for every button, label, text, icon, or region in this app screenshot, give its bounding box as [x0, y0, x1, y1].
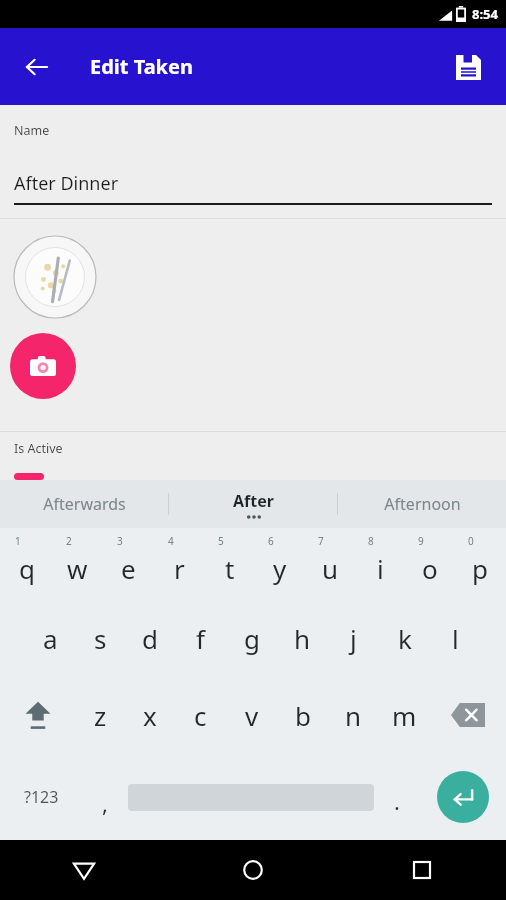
- staticText: .: [394, 786, 400, 816]
- staticText: Name: [14, 122, 50, 139]
- button[interactable]: Save: [444, 43, 492, 91]
- button[interactable]: l: [430, 600, 481, 676]
- staticText: Afterwards: [43, 493, 126, 515]
- button[interactable]: f: [175, 600, 226, 676]
- button[interactable]: k: [379, 600, 430, 676]
- button[interactable]: ,: [82, 754, 128, 840]
- staticText: k: [398, 621, 412, 656]
- staticText: 9: [418, 534, 424, 548]
- button[interactable]: 3: [103, 528, 154, 600]
- button[interactable]: ?123: [0, 754, 82, 840]
- staticText: 2: [66, 534, 72, 548]
- staticText: 3: [117, 534, 123, 548]
- button[interactable]: Enter: [437, 771, 489, 823]
- button[interactable]: n: [328, 676, 379, 754]
- staticText: m: [392, 698, 417, 733]
- button[interactable]: 1: [1, 528, 52, 600]
- staticText: After Dinner: [14, 171, 119, 196]
- staticText: Is Active: [14, 440, 63, 457]
- staticText: p: [472, 551, 488, 586]
- staticText: ?123: [24, 786, 59, 808]
- button[interactable]: 0: [455, 528, 505, 600]
- button[interactable]: g: [226, 600, 277, 676]
- staticText: After: [233, 490, 274, 512]
- staticText: 5: [218, 534, 224, 548]
- staticText: z: [94, 698, 107, 733]
- button[interactable]: .: [374, 754, 420, 840]
- staticText: b: [295, 698, 311, 733]
- staticText: d: [142, 621, 158, 656]
- button[interactable]: 7: [305, 528, 355, 600]
- button[interactable]: Backspace: [430, 676, 506, 754]
- staticText: f: [196, 621, 205, 656]
- staticText: s: [94, 621, 107, 656]
- button[interactable]: 6: [255, 528, 305, 600]
- staticText: c: [194, 698, 207, 733]
- staticText: h: [294, 621, 311, 656]
- button[interactable]: b: [277, 676, 328, 754]
- button[interactable]: 2: [52, 528, 103, 600]
- button[interactable]: 4: [154, 528, 205, 600]
- staticText: j: [350, 621, 357, 656]
- button[interactable]: s: [75, 600, 125, 676]
- button[interactable]: m: [379, 676, 430, 754]
- staticText: w: [67, 551, 88, 586]
- button[interactable]: After: [169, 480, 337, 528]
- button[interactable]: [14, 236, 96, 318]
- staticText: 0: [468, 534, 474, 548]
- staticText: 8:54: [472, 5, 498, 23]
- staticText: 8: [368, 534, 374, 548]
- staticText: v: [245, 698, 259, 733]
- button[interactable]: Shift: [0, 676, 75, 754]
- button[interactable]: h: [277, 600, 328, 676]
- button[interactable]: a: [25, 600, 75, 676]
- staticText: 6: [268, 534, 274, 548]
- staticText: x: [143, 698, 157, 733]
- button[interactable]: 5: [205, 528, 255, 600]
- staticText: r: [174, 551, 185, 586]
- staticText: ,: [102, 788, 108, 818]
- button[interactable]: c: [175, 676, 226, 754]
- button[interactable]: Take photo: [10, 333, 76, 399]
- button[interactable]: j: [328, 600, 379, 676]
- button[interactable]: Recents: [337, 840, 506, 900]
- staticText: Afternoon: [384, 493, 461, 515]
- button[interactable]: z: [75, 676, 125, 754]
- button[interactable]: Back: [14, 44, 60, 90]
- staticText: n: [345, 698, 362, 733]
- staticText: l: [452, 621, 459, 656]
- button[interactable]: Afternoon: [338, 480, 506, 528]
- button[interactable]: x: [125, 676, 175, 754]
- button[interactable]: v: [226, 676, 277, 754]
- staticText: u: [322, 551, 339, 586]
- staticText: 7: [318, 534, 324, 548]
- button[interactable]: 9: [405, 528, 455, 600]
- staticText: q: [19, 551, 35, 586]
- staticText: Edit Taken: [90, 53, 193, 80]
- staticText: y: [273, 551, 287, 586]
- button[interactable]: Is Active toggle: [14, 473, 44, 480]
- staticText: 1: [15, 534, 21, 548]
- staticText: t: [225, 551, 235, 586]
- staticText: 4: [168, 534, 174, 548]
- button[interactable]: 8: [355, 528, 405, 600]
- button[interactable]: Back: [0, 840, 168, 900]
- staticText: g: [244, 621, 260, 656]
- staticText: i: [377, 551, 384, 586]
- staticText: a: [43, 621, 58, 656]
- staticText: e: [121, 551, 136, 586]
- button[interactable]: Afterwards: [0, 480, 168, 528]
- button[interactable]: d: [125, 600, 175, 676]
- staticText: o: [422, 551, 438, 586]
- button[interactable]: Home: [168, 840, 337, 900]
